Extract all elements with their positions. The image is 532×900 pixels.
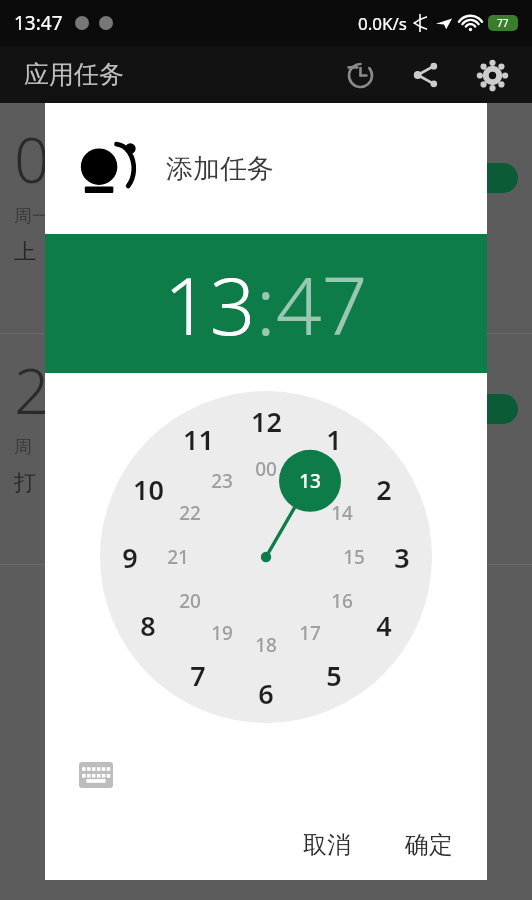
staticText: 取消 <box>303 830 351 860</box>
button[interactable]: 47 <box>276 249 368 358</box>
button[interactable]: 18 <box>244 623 288 667</box>
staticText: 上 <box>14 238 36 266</box>
button[interactable]: 4 <box>362 603 406 647</box>
button[interactable]: 17 <box>288 611 332 655</box>
button[interactable]: 20 <box>168 579 212 623</box>
staticText: 13 <box>299 468 321 494</box>
staticText: 8 <box>140 607 156 644</box>
staticText: 23 <box>211 468 233 494</box>
staticText: 添加任务 <box>166 152 274 186</box>
button[interactable]: 9 <box>108 535 152 579</box>
button[interactable]: Toggle <box>466 163 518 193</box>
button[interactable]: 16 <box>320 579 364 623</box>
button[interactable]: 13 <box>288 459 332 503</box>
staticText: 17 <box>299 620 321 646</box>
staticText: 11 <box>183 421 214 458</box>
button[interactable]: 19 <box>200 611 244 655</box>
staticText: 19 <box>211 620 233 646</box>
staticText: 2 <box>14 348 50 432</box>
staticText: 2 <box>376 471 392 508</box>
button[interactable]: 1 <box>312 417 356 461</box>
staticText: 16 <box>331 588 353 614</box>
button[interactable]: 21 <box>156 535 200 579</box>
staticText: 15 <box>343 544 365 570</box>
staticText: 0 <box>14 117 50 201</box>
staticText: 4 <box>376 607 392 644</box>
staticText: 00 <box>255 456 277 482</box>
button[interactable]: 11 <box>176 417 220 461</box>
button[interactable]: History <box>338 53 382 97</box>
staticText: 13:47 <box>14 10 63 36</box>
staticText: 应用任务 <box>24 59 124 90</box>
staticText: 12 <box>251 403 282 440</box>
button[interactable]: Settings <box>470 53 514 97</box>
button[interactable]: 5 <box>312 653 356 697</box>
staticText: 6 <box>258 675 274 712</box>
staticText: 77 <box>497 16 509 30</box>
button[interactable]: 10 <box>126 467 170 511</box>
staticText: 20 <box>179 588 201 614</box>
staticText: 7 <box>190 657 206 694</box>
button[interactable]: 14 <box>320 491 364 535</box>
button[interactable]: 13 <box>164 249 256 358</box>
button[interactable]: 12 <box>244 399 288 443</box>
staticText: 10 <box>133 471 164 508</box>
button[interactable]: 15 <box>332 535 376 579</box>
button[interactable]: Toggle <box>466 394 518 424</box>
staticText: : <box>256 249 276 358</box>
staticText: 周 <box>14 436 32 459</box>
button[interactable]: Share <box>404 53 448 97</box>
button[interactable]: 7 <box>176 653 220 697</box>
staticText: 周一 <box>14 205 50 228</box>
button[interactable]: 2 <box>362 467 406 511</box>
button[interactable]: 23 <box>200 459 244 503</box>
staticText: 18 <box>255 632 277 658</box>
button[interactable]: 确定 <box>391 820 467 870</box>
staticText: 0.0K/s <box>358 12 407 35</box>
staticText: 22 <box>179 500 201 526</box>
staticText: 47 <box>276 249 368 358</box>
staticText: 3 <box>394 539 410 576</box>
button[interactable]: 8 <box>126 603 170 647</box>
staticText: 9 <box>122 539 138 576</box>
button[interactable]: 00 <box>244 447 288 491</box>
button[interactable]: 22 <box>168 491 212 535</box>
staticText: 打 <box>14 469 36 497</box>
button[interactable]: Switch to keyboard input <box>77 760 115 790</box>
button[interactable]: 3 <box>380 535 424 579</box>
staticText: 21 <box>167 544 189 570</box>
staticText: 确定 <box>405 830 453 860</box>
staticText: 1 <box>326 421 342 458</box>
staticText: 13 <box>164 249 256 358</box>
staticText: 5 <box>326 657 342 694</box>
button[interactable]: 6 <box>244 671 288 715</box>
button[interactable]: 取消 <box>289 820 365 870</box>
staticText: 14 <box>331 500 353 526</box>
